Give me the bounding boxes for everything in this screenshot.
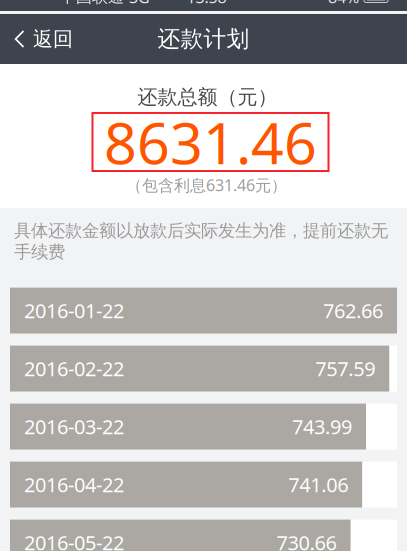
staticText: 2016-01-22 xyxy=(24,297,124,324)
staticText: 2016-03-22 xyxy=(24,413,124,440)
staticText: 730.66 xyxy=(277,529,337,551)
button[interactable]: 2016-01-22 xyxy=(10,288,397,334)
button[interactable]: 返回 xyxy=(0,14,83,64)
button[interactable]: 2016-02-22 xyxy=(10,346,397,392)
staticText: 13:58 xyxy=(186,0,226,8)
staticText: 返回 xyxy=(33,27,73,51)
staticText: 8631.46 xyxy=(104,104,317,180)
staticText: 2016-04-22 xyxy=(24,471,124,498)
staticText: 743.99 xyxy=(292,413,352,440)
staticText: 741.06 xyxy=(288,471,348,498)
staticText: 757.59 xyxy=(315,355,375,382)
staticText: 中国联通 xyxy=(60,0,124,7)
button[interactable]: 2016-04-22 xyxy=(10,462,397,508)
staticText: 762.66 xyxy=(323,297,383,324)
staticText: （包含利息631.46元） xyxy=(126,174,287,196)
staticText: 3G xyxy=(129,0,150,8)
button[interactable]: 2016-03-22 xyxy=(10,404,397,450)
button[interactable]: 2016-05-22 xyxy=(10,520,397,551)
staticText: 还款计划 xyxy=(157,25,249,53)
staticText: 2016-05-22 xyxy=(24,529,124,551)
staticText: 具体还款金额以放款后实际发生为准，提前还款无手续费 xyxy=(14,220,388,263)
staticText: 84% xyxy=(328,0,359,8)
staticText: 2016-02-22 xyxy=(24,355,124,382)
staticText: 还款总额（元） xyxy=(137,85,277,109)
